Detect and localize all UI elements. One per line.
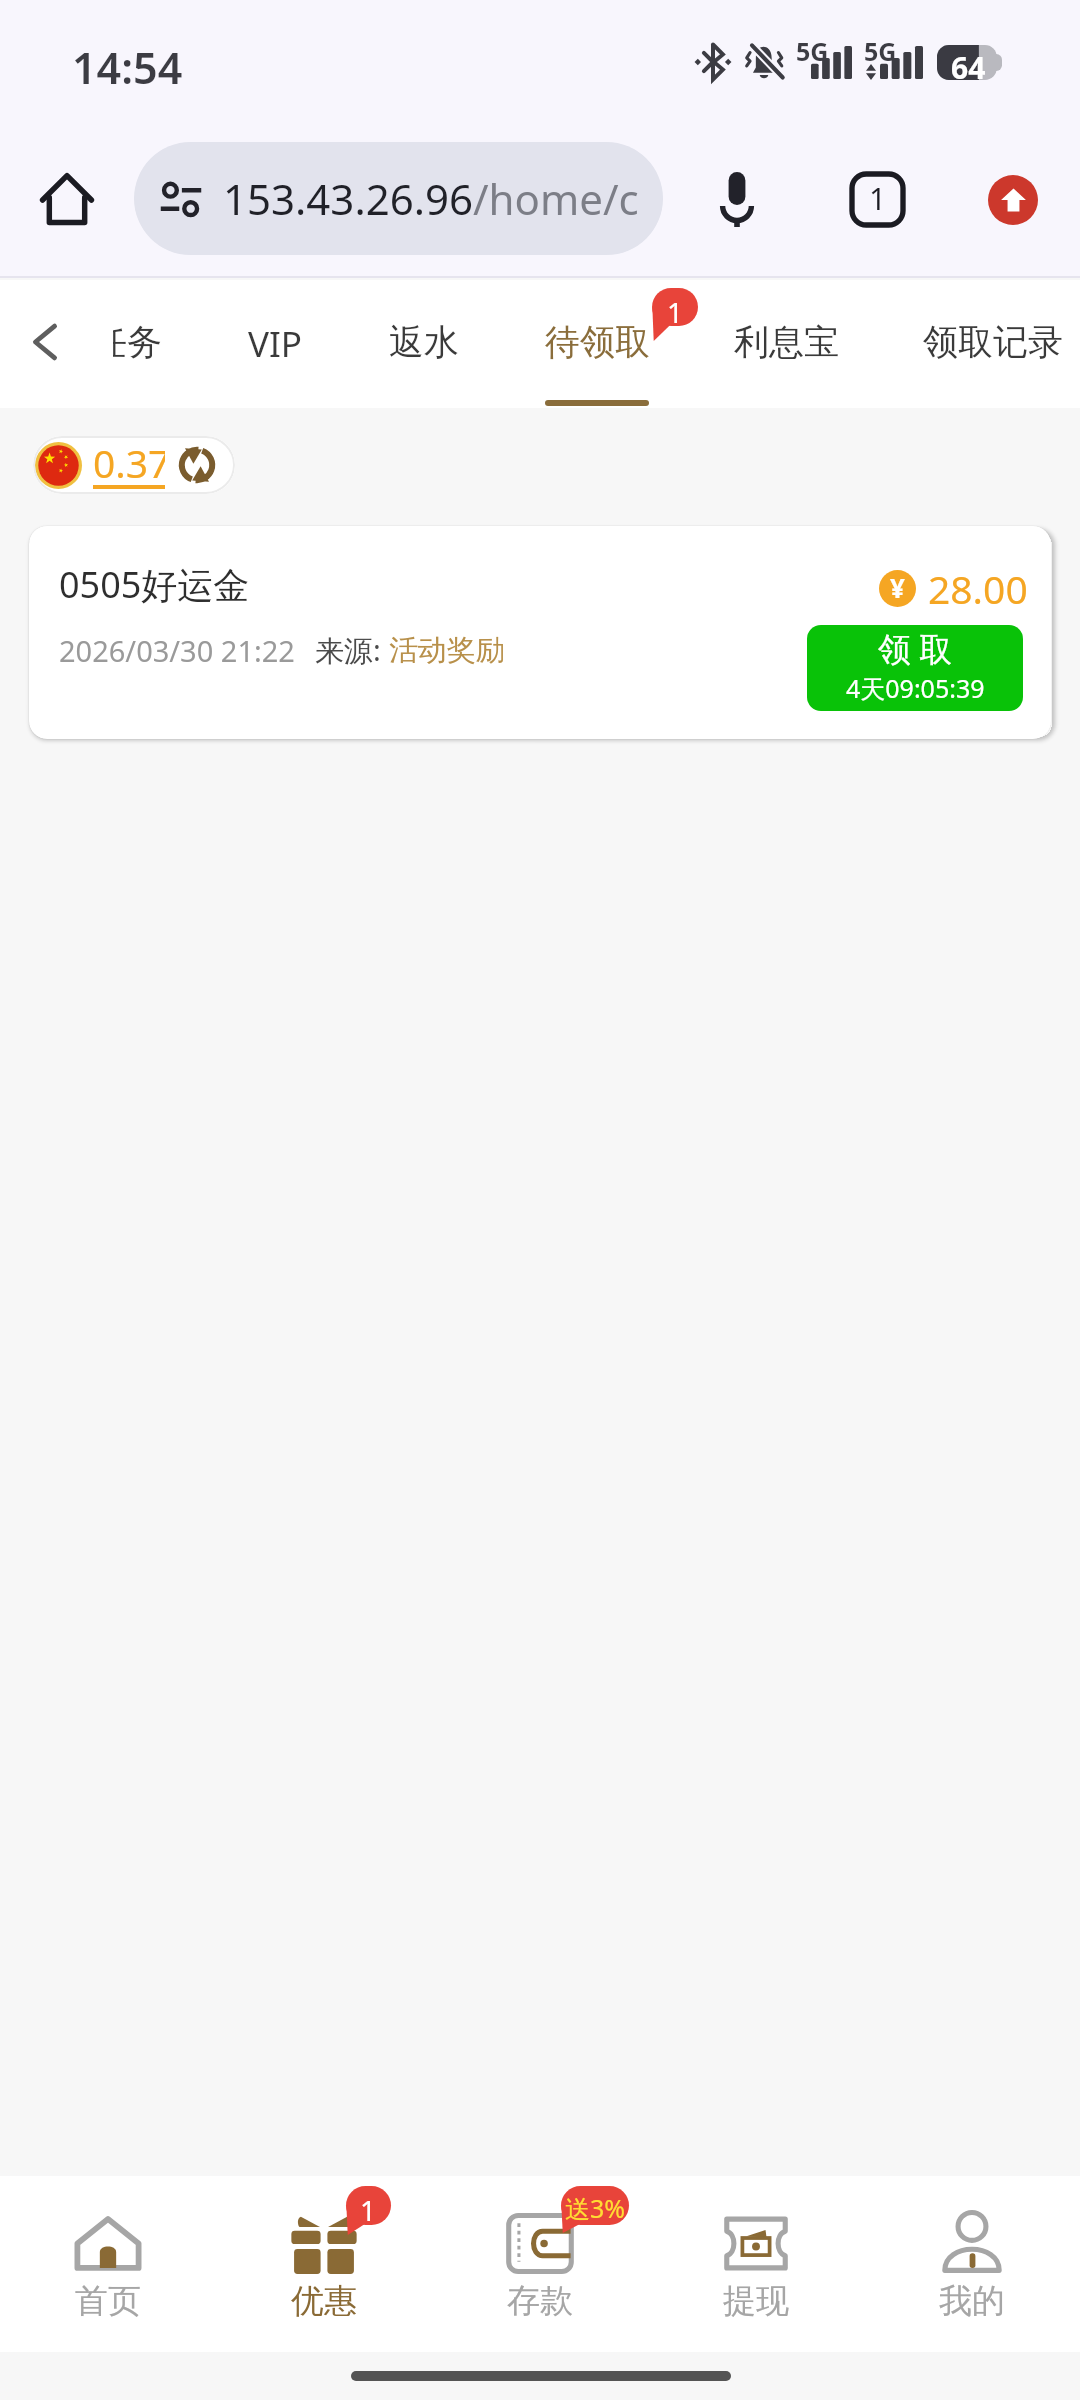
button[interactable]: 我的: [864, 2176, 1080, 2352]
button[interactable]: VIP: [229, 280, 321, 408]
button[interactable]: 待领取: [524, 280, 670, 408]
button[interactable]: 任务: [113, 280, 183, 408]
staticText: 5G: [864, 34, 897, 68]
button[interactable]: 1: [216, 2176, 432, 2352]
staticText: 送3%: [565, 2191, 626, 2225]
button[interactable]: Voice search: [695, 157, 779, 241]
button[interactable]: 送3%: [432, 2176, 648, 2352]
button[interactable]: Home: [31, 163, 103, 235]
staticText: 活动奖励: [389, 632, 505, 669]
staticText: 0505好运金: [59, 560, 250, 609]
staticText: 5G: [796, 34, 829, 68]
button[interactable]: 153.43.26.96: [134, 142, 663, 255]
button[interactable]: 0.37: [33, 436, 235, 494]
staticText: /home/c: [473, 170, 639, 227]
staticText: 28.00: [928, 562, 1028, 615]
staticText: 返水: [389, 320, 459, 364]
staticText: 领取记录: [923, 320, 1063, 364]
button[interactable]: Back: [5, 302, 85, 382]
staticText: 存款: [507, 2280, 573, 2322]
staticText: 153.43.26.96: [223, 170, 473, 227]
staticText: 1: [667, 293, 684, 331]
button[interactable]: 0505好运金: [29, 526, 1051, 739]
staticText: 0.37: [93, 436, 165, 489]
button[interactable]: Tabs: [835, 157, 919, 241]
button[interactable]: 返水: [368, 280, 480, 408]
staticText: 利息宝: [734, 320, 839, 364]
staticText: 1: [360, 2191, 377, 2229]
staticText: VIP: [248, 320, 303, 368]
button[interactable]: Update: [988, 175, 1038, 225]
staticText: 优惠: [291, 2280, 357, 2322]
staticText: 2026/03/30 21:22: [59, 631, 295, 670]
staticText: 提现: [723, 2280, 789, 2322]
staticText: 我的: [939, 2280, 1005, 2322]
staticText: 首页: [75, 2280, 141, 2322]
button[interactable]: 提现: [648, 2176, 864, 2352]
staticText: 64: [951, 47, 986, 82]
staticText: 14:54: [72, 38, 183, 97]
staticText: ¥: [890, 570, 905, 605]
button[interactable]: 首页: [0, 2176, 216, 2352]
button[interactable]: 领 取: [807, 625, 1023, 711]
staticText: 领 取: [878, 626, 953, 671]
staticText: 待领取: [545, 320, 650, 364]
button[interactable]: 利息宝: [713, 280, 859, 408]
staticText: 1: [869, 178, 887, 219]
staticText: 任务: [113, 320, 162, 364]
button[interactable]: 领取记录: [903, 280, 1080, 408]
staticText: 4天09:05:39: [846, 671, 985, 705]
staticText: 来源:: [315, 630, 389, 670]
